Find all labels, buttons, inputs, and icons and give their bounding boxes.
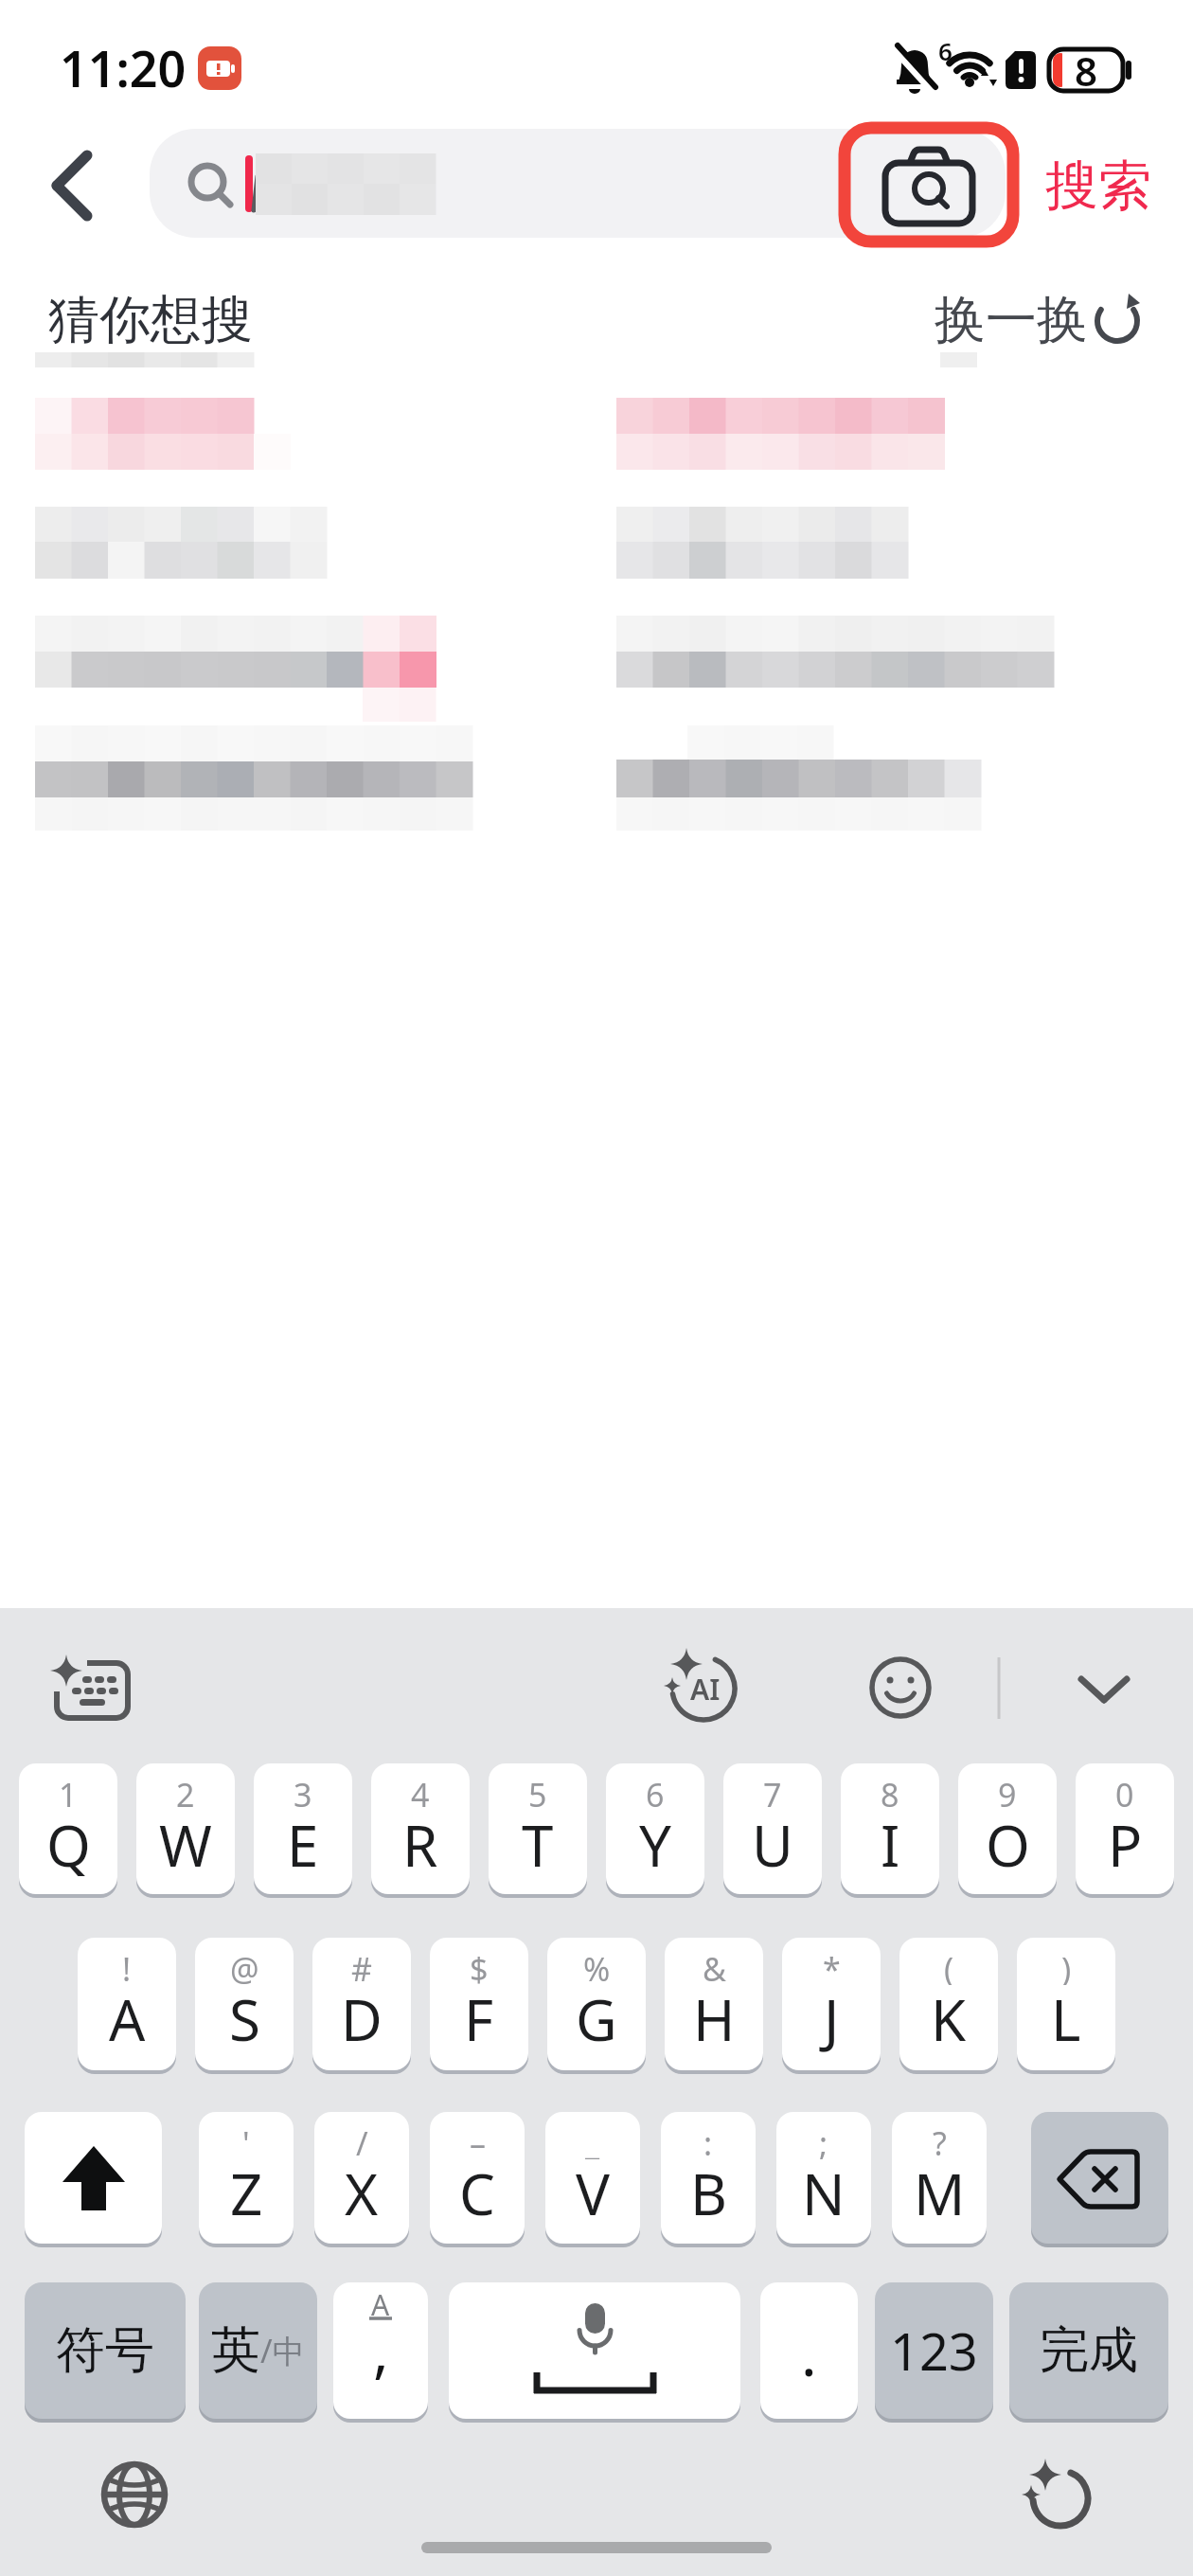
button[interactable] [38,142,104,227]
staticText: R [402,1806,438,1884]
button[interactable] [150,129,1006,238]
staticText: 9 [998,1773,1017,1811]
staticText: E [287,1806,319,1884]
staticText: 6 [646,1773,665,1811]
button[interactable] [136,1763,235,1894]
button[interactable] [841,1763,939,1894]
staticText: ' [242,2121,250,2159]
button[interactable] [958,1763,1057,1894]
staticText: S [229,1980,260,2058]
button[interactable] [760,2282,858,2419]
staticText: $ [470,1947,489,1985]
staticText: : [703,2121,713,2159]
button[interactable] [1013,2453,1108,2538]
button[interactable] [1031,2112,1168,2244]
button[interactable] [1076,1763,1174,1894]
staticText: P [1108,1806,1143,1884]
staticText: I [881,1806,900,1884]
staticText: T [522,1806,554,1884]
button[interactable] [1060,1653,1155,1724]
staticText: D [341,1980,383,2058]
staticText: 搜索 [1045,152,1151,220]
button[interactable] [78,1938,176,2070]
button[interactable] [875,2282,993,2419]
staticText: V [576,2155,610,2232]
button[interactable] [254,1763,352,1894]
staticText: N [802,2155,846,2232]
button[interactable] [314,2112,409,2244]
button[interactable] [545,2112,640,2244]
button[interactable] [38,1648,142,1733]
button[interactable] [776,2112,871,2244]
staticText: ) [1061,1947,1072,1985]
button[interactable] [371,1763,470,1894]
button[interactable] [857,1648,944,1733]
button[interactable] [449,2282,740,2419]
staticText: 0 [1115,1773,1134,1811]
staticText: / [356,2121,368,2159]
staticText: G [576,1980,617,2058]
staticText: 8 [1075,44,1098,93]
button[interactable]: 搜索 [1040,152,1157,220]
button[interactable] [1009,2282,1168,2419]
button[interactable] [606,1763,704,1894]
button[interactable] [489,1763,587,1894]
staticText: ! [122,1947,132,1985]
staticText: * [823,1947,841,1985]
staticText: AI [690,1670,721,1708]
staticText: 11:20 [60,34,187,95]
staticText: Z [230,2155,263,2232]
button[interactable] [25,2282,186,2419]
staticText: M [914,2155,966,2232]
button[interactable] [547,1938,646,2070]
staticText: 5 [528,1773,547,1811]
staticText: 猜你想搜 [48,288,253,352]
staticText: H [693,1980,736,2058]
staticText: @ [230,1947,259,1985]
staticText: C [459,2155,495,2232]
staticText: X [345,2155,379,2232]
button[interactable] [838,121,1020,248]
staticText: K [931,1980,967,2058]
staticText: ( [944,1947,954,1985]
staticText: F [464,1980,494,2058]
button[interactable] [312,1938,411,2070]
staticText: 英 [211,2319,260,2382]
staticText: . [801,2314,817,2393]
staticText: 8 [881,1773,899,1811]
staticText: 4 [411,1773,430,1811]
button[interactable] [195,1938,294,2070]
staticText: 7 [763,1773,782,1811]
button[interactable] [430,1938,528,2070]
button[interactable] [1017,1938,1115,2070]
button[interactable] [333,2282,428,2419]
button[interactable] [25,2112,162,2244]
button[interactable] [928,286,1146,352]
staticText: 2 [176,1773,195,1811]
button[interactable] [892,2112,987,2244]
button[interactable] [199,2282,317,2419]
button[interactable] [899,1938,998,2070]
staticText: A [371,2285,390,2324]
staticText: ? [933,2121,947,2159]
staticText: /中 [260,2329,305,2372]
button[interactable] [95,2455,176,2536]
button[interactable] [199,2112,294,2244]
staticText: # [351,1947,372,1985]
staticText: & [703,1947,726,1985]
button[interactable] [430,2112,525,2244]
staticText: , [373,2310,389,2389]
staticText: Q [46,1806,91,1884]
staticText: O [986,1806,1030,1884]
button[interactable] [723,1763,822,1894]
button[interactable] [19,1763,117,1894]
button[interactable] [653,1648,748,1733]
staticText: 3 [294,1773,312,1811]
staticText: J [824,1980,840,2058]
button[interactable] [665,1938,763,2070]
staticText: 换一换 [935,288,1088,350]
button[interactable] [661,2112,756,2244]
staticText: 完成 [1040,2319,1138,2382]
staticText: U [752,1806,793,1884]
button[interactable] [782,1938,881,2070]
